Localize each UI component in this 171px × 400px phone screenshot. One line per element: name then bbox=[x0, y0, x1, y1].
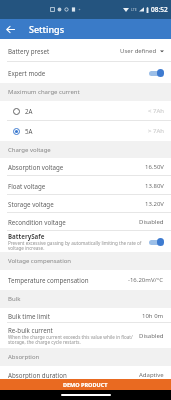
staticText: 16.50V bbox=[145, 163, 164, 171]
staticText: Settings bbox=[29, 23, 65, 35]
staticText: 08:52 bbox=[151, 5, 168, 14]
staticText: Storage voltage bbox=[8, 200, 54, 208]
button[interactable]: Absorption duration bbox=[0, 366, 171, 383]
button[interactable]: Back bbox=[0, 19, 20, 39]
button[interactable]: BatterySafe bbox=[0, 231, 171, 252]
staticText: LTE bbox=[131, 7, 137, 12]
staticText: -16.20mV/°C bbox=[128, 276, 164, 284]
button[interactable]: Storage voltage bbox=[0, 195, 171, 213]
button[interactable]: Expert mode bbox=[0, 62, 171, 83]
staticText: Bulk bbox=[8, 295, 21, 303]
staticText: Maximum charge current bbox=[8, 88, 80, 96]
button[interactable]: 5A bbox=[0, 121, 171, 141]
staticText: 13.20V bbox=[145, 200, 164, 208]
staticText: Charge voltage bbox=[8, 146, 51, 154]
staticText: Absorption voltage bbox=[8, 163, 64, 171]
staticText: 13.80V bbox=[145, 182, 164, 190]
staticText: Expert mode bbox=[8, 69, 46, 77]
staticText: 10h 0m bbox=[142, 312, 164, 320]
staticText: Absorption bbox=[8, 353, 40, 361]
staticText: Prevent excessive gassing by automatical… bbox=[8, 240, 149, 252]
button[interactable]: 2A bbox=[0, 101, 171, 121]
button[interactable]: Temperature compensation bbox=[0, 270, 171, 290]
staticText: BatterySafe bbox=[8, 232, 45, 240]
staticText: Temperature compensation bbox=[8, 276, 89, 284]
staticText: 5A bbox=[25, 127, 148, 135]
staticText: Float voltage bbox=[8, 182, 46, 190]
staticText: > 7Ah bbox=[148, 127, 164, 135]
staticText: Absorption duration bbox=[8, 371, 67, 379]
staticText: Recondition voltage bbox=[8, 218, 66, 226]
staticText: < 7Ah bbox=[148, 107, 164, 115]
staticText: 2A bbox=[25, 107, 148, 115]
button[interactable]: Float voltage bbox=[0, 176, 171, 195]
staticText: Adaptive bbox=[139, 371, 164, 379]
button[interactable]: Bulk time limit bbox=[0, 308, 171, 323]
staticText: DEMO PRODUCT bbox=[63, 381, 108, 388]
staticText: Battery preset bbox=[8, 47, 50, 55]
staticText: User defined bbox=[120, 47, 157, 55]
button[interactable]: Battery preset bbox=[0, 39, 171, 62]
button[interactable]: Re-bulk current bbox=[0, 323, 171, 348]
staticText: Re-bulk current bbox=[8, 326, 53, 334]
button[interactable]: Absorption voltage bbox=[0, 158, 171, 176]
staticText: Disabled bbox=[139, 218, 164, 226]
button[interactable]: Recondition voltage bbox=[0, 213, 171, 231]
staticText: When the charge current exceeds this val… bbox=[8, 334, 139, 346]
staticText: Bulk time limit bbox=[8, 312, 50, 320]
staticText: Disabled bbox=[139, 332, 164, 340]
staticText: Voltage compensation bbox=[8, 257, 72, 265]
